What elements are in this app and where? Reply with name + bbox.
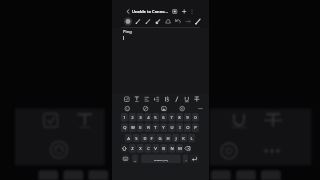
button[interactable]: T: [152, 123, 159, 132]
button[interactable]: Drawing tool 8: [193, 17, 203, 27]
button[interactable]: V: [152, 144, 159, 153]
staticText: Y: [162, 125, 165, 131]
staticText: H: [166, 136, 170, 142]
button[interactable]: Symbols: [122, 155, 129, 164]
button[interactable]: 9: [184, 113, 191, 122]
staticText: Unable to Conne…: [132, 9, 168, 14]
button[interactable]: M: [176, 144, 183, 153]
button[interactable]: View mode: [170, 7, 179, 16]
staticText: I: [179, 125, 181, 131]
button[interactable]: Insert 4: [175, 104, 193, 112]
button[interactable]: Drawing tool 2: [133, 17, 143, 27]
staticText: O: [186, 125, 190, 131]
staticText: F: [150, 136, 153, 142]
button[interactable]: Back: [123, 7, 132, 16]
staticText: 3: [139, 115, 142, 121]
staticText: 2: [131, 115, 134, 121]
button[interactable]: 6: [160, 113, 167, 122]
button[interactable]: 4: [145, 113, 152, 122]
staticText: L: [190, 136, 193, 142]
button[interactable]: Backspace: [184, 144, 191, 153]
staticText: .: [185, 157, 187, 163]
button[interactable]: Drawing tool 5: [163, 17, 173, 27]
staticText: R: [147, 125, 150, 131]
button[interactable]: Format 3: [142, 94, 152, 104]
staticText: English (US): [154, 158, 168, 161]
button[interactable]: Period: [183, 155, 188, 164]
button[interactable]: R: [145, 123, 152, 132]
staticText: A: [127, 136, 130, 142]
button[interactable]: C: [145, 144, 152, 153]
button[interactable]: Q: [121, 123, 128, 132]
button[interactable]: B: [160, 144, 167, 153]
button[interactable]: Format 8: [192, 94, 202, 104]
button[interactable]: More options: [188, 7, 197, 16]
button[interactable]: L: [188, 134, 195, 143]
button[interactable]: G: [156, 134, 163, 143]
button[interactable]: 1: [121, 113, 128, 122]
button[interactable]: Format 7: [182, 94, 192, 104]
staticText: V: [154, 146, 157, 152]
button[interactable]: 5: [152, 113, 159, 122]
button[interactable]: 3: [137, 113, 144, 122]
staticText: M: [178, 146, 182, 152]
button[interactable]: Z: [129, 144, 136, 153]
staticText: 7: [170, 115, 173, 121]
button[interactable]: X: [137, 144, 144, 153]
button[interactable]: Format 6: [172, 94, 182, 104]
button[interactable]: E: [137, 123, 144, 132]
staticText: U: [170, 125, 174, 131]
staticText: G: [158, 136, 162, 142]
button[interactable]: F: [148, 134, 155, 143]
staticText: 8: [178, 115, 181, 121]
staticText: D: [143, 136, 147, 142]
button[interactable]: P: [192, 123, 199, 132]
button[interactable]: Format 4: [152, 94, 162, 104]
button[interactable]: Drawing tool 1: [123, 17, 133, 27]
button[interactable]: N: [168, 144, 175, 153]
button[interactable]: Format 5: [162, 94, 172, 104]
staticText: P: [194, 125, 197, 131]
button[interactable]: D: [141, 134, 148, 143]
staticText: Z: [131, 146, 134, 152]
button[interactable]: A: [125, 134, 132, 143]
button[interactable]: Insert 5: [193, 104, 209, 112]
staticText: 5: [154, 115, 157, 121]
button[interactable]: 2: [129, 113, 136, 122]
button[interactable]: H: [164, 134, 171, 143]
button[interactable]: K: [180, 134, 187, 143]
button[interactable]: Comma: [132, 155, 138, 164]
button[interactable]: U: [168, 123, 175, 132]
button[interactable]: S: [133, 134, 140, 143]
button[interactable]: I: [176, 123, 183, 132]
staticText: N: [170, 146, 174, 152]
button[interactable]: Drawing tool 3: [143, 17, 153, 27]
button[interactable]: 7: [168, 113, 175, 122]
staticText: 9: [186, 115, 189, 121]
button[interactable]: Drawing tool 6: [173, 17, 183, 27]
button[interactable]: Y: [160, 123, 167, 132]
button[interactable]: Insert 1: [121, 104, 139, 112]
button[interactable]: J: [172, 134, 179, 143]
button[interactable]: Enter: [190, 155, 199, 164]
button[interactable]: Format 1: [122, 94, 132, 104]
button[interactable]: W: [129, 123, 136, 132]
button[interactable]: 8: [176, 113, 183, 122]
staticText: ,: [134, 157, 136, 163]
button[interactable]: Add: [180, 7, 189, 16]
button[interactable]: Drawing tool 4: [153, 17, 163, 27]
staticText: W: [131, 125, 135, 131]
button[interactable]: O: [184, 123, 191, 132]
staticText: T: [154, 125, 157, 131]
button[interactable]: 0: [192, 113, 199, 122]
button[interactable]: Drawing tool 7: [183, 17, 193, 27]
staticText: C: [147, 146, 150, 152]
button[interactable]: Shift: [121, 144, 128, 153]
button[interactable]: Insert 2: [139, 104, 157, 112]
staticText: Q: [123, 125, 127, 131]
button[interactable]: Insert 3: [157, 104, 175, 112]
button[interactable]: Format 2: [132, 94, 142, 104]
staticText: S: [135, 136, 138, 142]
staticText: 0: [194, 115, 197, 121]
button[interactable]: Space: [141, 155, 181, 164]
